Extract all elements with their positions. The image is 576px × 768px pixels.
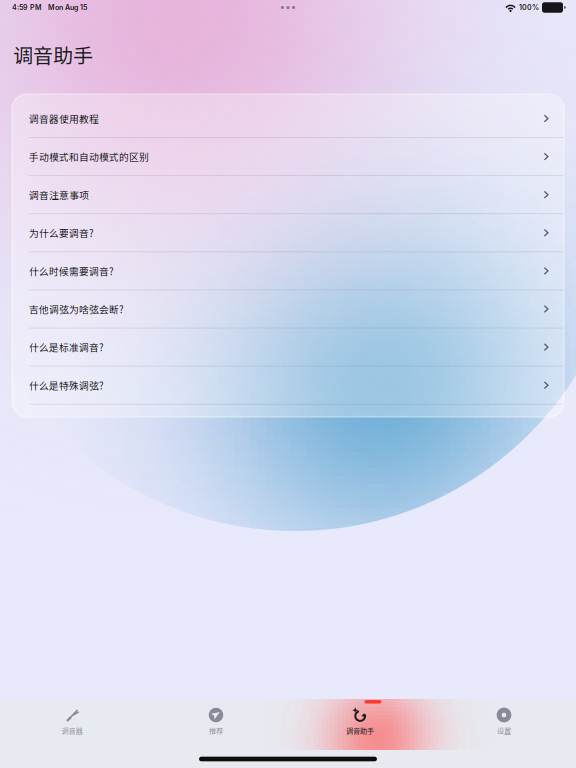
staticText: 为什么要调音?: [29, 226, 94, 240]
button[interactable]: 调音器使用教程: [12, 100, 564, 137]
staticText: 什么是特殊调弦?: [29, 378, 104, 392]
button[interactable]: 吉他调弦为啥弦会断?: [12, 290, 564, 328]
staticText: 100%: [517, 3, 539, 12]
button[interactable]: 设置: [432, 700, 576, 750]
staticText: 什么时候需要调音?: [29, 264, 114, 278]
button[interactable]: 调音助手: [288, 700, 432, 750]
button[interactable]: 调音器: [0, 700, 144, 750]
staticText: 调音助手: [13, 40, 93, 69]
button[interactable]: 什么时候需要调音?: [12, 252, 564, 289]
button[interactable]: 推荐: [144, 700, 288, 750]
staticText: 4:59 PM: [12, 3, 42, 12]
staticText: 吉他调弦为啥弦会断?: [29, 302, 124, 316]
staticText: 调音注意事项: [29, 188, 89, 202]
staticText: 什么是标准调音?: [29, 340, 104, 354]
staticText: Mon Aug 15: [42, 3, 87, 12]
staticText: 调音助手: [346, 725, 374, 736]
button[interactable]: 手动模式和自动模式的区别: [12, 138, 564, 175]
staticText: 手动模式和自动模式的区别: [29, 150, 149, 164]
staticText: 调音器使用教程: [29, 111, 99, 126]
button[interactable]: 调音注意事项: [12, 176, 564, 213]
staticText: 调音器: [61, 725, 82, 736]
button[interactable]: 为什么要调音?: [12, 214, 564, 251]
staticText: 推荐: [209, 725, 223, 736]
button[interactable]: 什么是特殊调弦?: [12, 367, 564, 404]
button[interactable]: 什么是标准调音?: [12, 328, 564, 366]
staticText: 设置: [497, 725, 511, 736]
